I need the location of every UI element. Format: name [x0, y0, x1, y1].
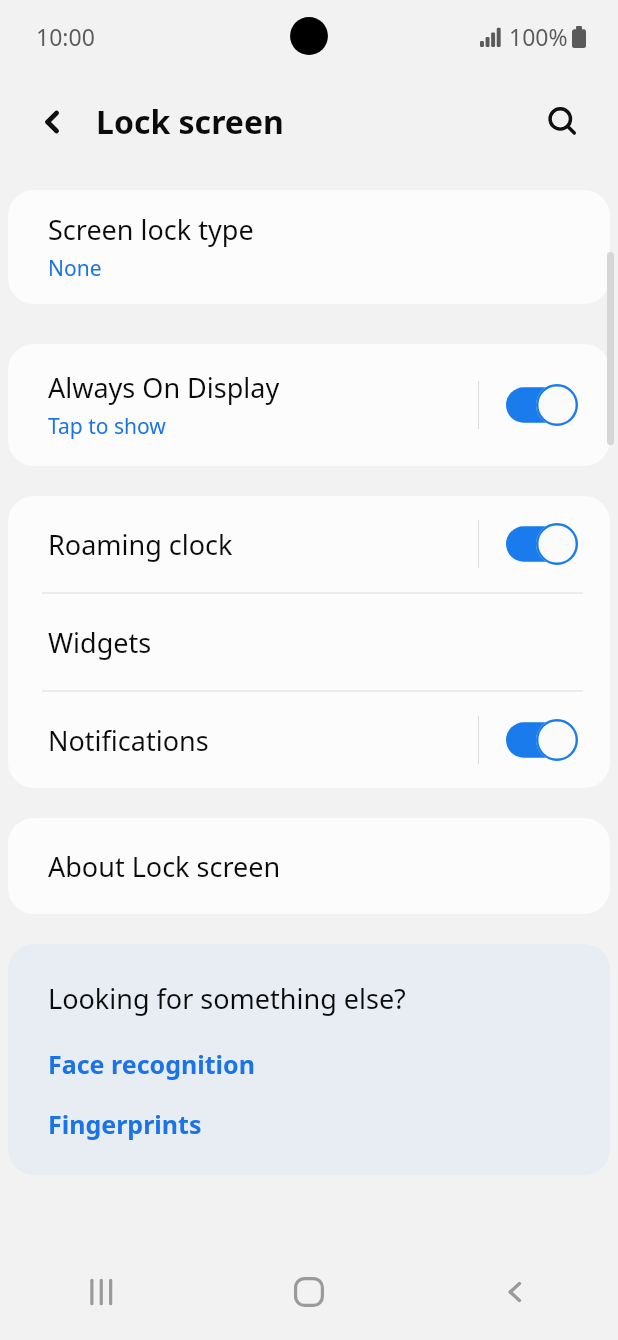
button[interactable]: Widgets: [8, 594, 610, 690]
staticText: Tap to show: [48, 412, 166, 441]
button[interactable]: Screen lock type: [8, 190, 610, 304]
staticText: Lock screen: [96, 100, 284, 144]
button[interactable]: Toggle: [478, 496, 610, 592]
staticText: 10:00: [36, 21, 95, 52]
staticText: Widgets: [48, 624, 152, 661]
staticText: 100%: [509, 21, 568, 52]
button[interactable]: Toggle: [478, 692, 610, 788]
button[interactable]: Roaming clock: [8, 496, 478, 592]
button[interactable]: Fingerprints: [48, 1107, 202, 1141]
button[interactable]: Back: [412, 1244, 618, 1340]
button[interactable]: Home: [206, 1244, 412, 1340]
staticText: Roaming clock: [48, 526, 233, 563]
button[interactable]: Search: [532, 91, 594, 153]
staticText: Screen lock type: [48, 211, 254, 248]
button[interactable]: Face recognition: [48, 1047, 255, 1081]
button[interactable]: Back: [22, 91, 84, 153]
staticText: Notifications: [48, 722, 209, 759]
staticText: Fingerprints: [48, 1107, 202, 1141]
button[interactable]: Always On Display: [8, 344, 478, 466]
staticText: None: [48, 254, 102, 283]
button[interactable]: About Lock screen: [8, 818, 610, 914]
staticText: Face recognition: [48, 1047, 255, 1081]
staticText: Always On Display: [48, 369, 280, 406]
button[interactable]: Recent apps: [0, 1244, 206, 1340]
button[interactable]: Toggle: [478, 344, 610, 466]
button[interactable]: Notifications: [8, 692, 478, 788]
staticText: About Lock screen: [48, 848, 281, 885]
staticText: Looking for something else?: [48, 980, 406, 1017]
